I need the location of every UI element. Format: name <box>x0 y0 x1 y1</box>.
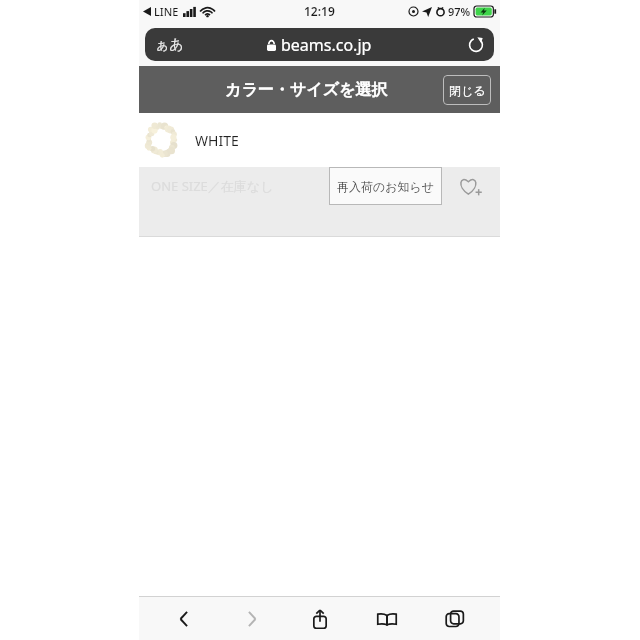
button[interactable]: Tabs <box>432 599 478 639</box>
button[interactable]: 閉じる <box>443 75 491 105</box>
staticText: WHITE <box>195 131 239 150</box>
staticText: ぁあ <box>155 36 184 54</box>
staticText: beams.co.jp <box>281 34 372 56</box>
staticText: 再入荷のお知らせ <box>337 179 435 194</box>
staticText: 97% <box>448 4 471 19</box>
button[interactable]: WHITE <box>139 113 500 167</box>
button[interactable]: Back <box>161 599 207 639</box>
staticText: 閉じる <box>449 83 486 98</box>
staticText: 12:19 <box>304 3 335 19</box>
staticText: LINE <box>154 4 179 19</box>
staticText: ONE SIZE／在庫なし <box>151 177 329 195</box>
button[interactable]: Forward <box>229 599 275 639</box>
button[interactable]: Reload <box>466 35 486 55</box>
staticText: カラー・サイズを選択 <box>225 80 388 100</box>
button[interactable]: Share <box>297 599 343 639</box>
button[interactable]: 再入荷のお知らせ <box>329 167 442 205</box>
button[interactable]: Bookmarks <box>364 599 410 639</box>
button[interactable]: Add to wishlist <box>454 169 488 203</box>
button[interactable]: ぁあ <box>145 28 494 61</box>
